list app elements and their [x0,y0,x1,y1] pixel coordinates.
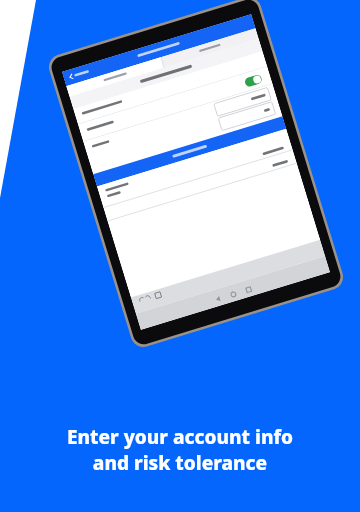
staticText: and risk tolerance [16,450,344,476]
staticText: Enter your account info [16,424,344,450]
